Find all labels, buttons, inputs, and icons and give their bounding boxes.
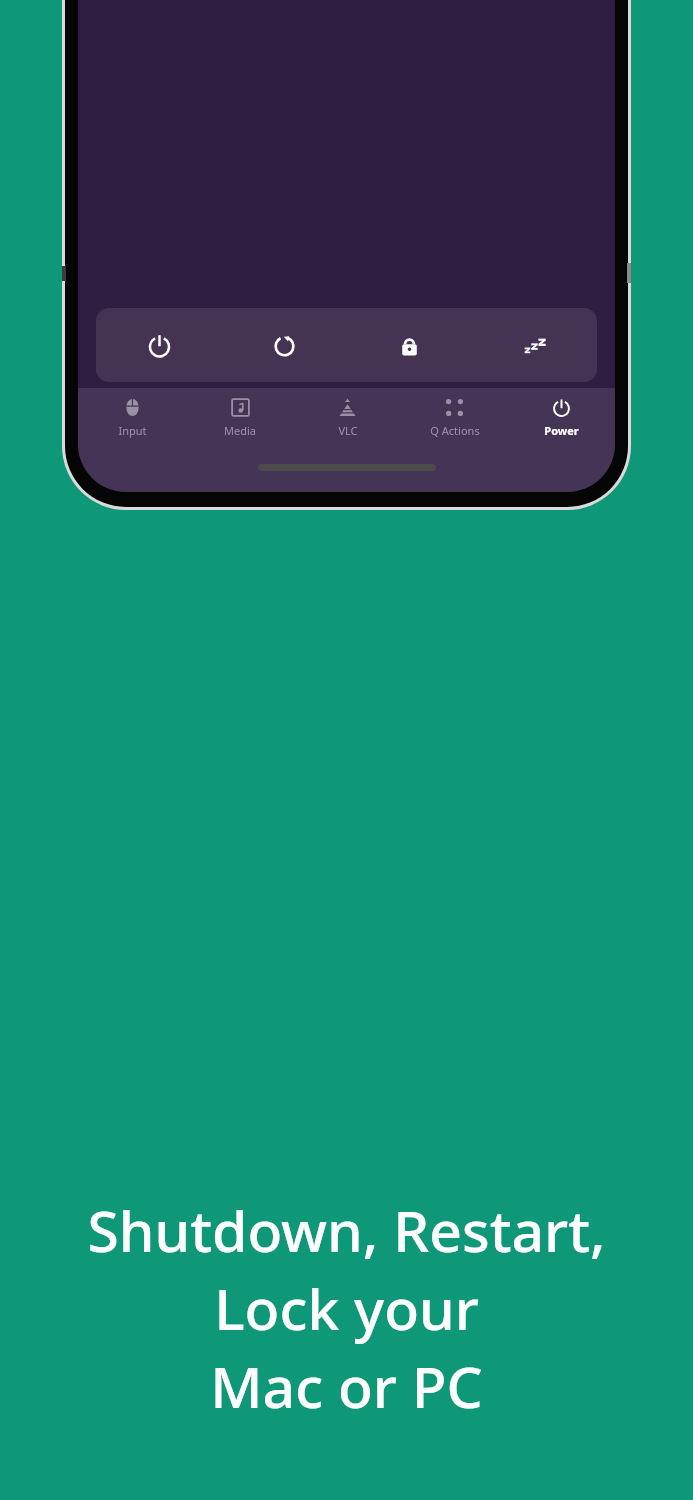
staticText: Power — [544, 423, 579, 438]
button[interactable]: Media — [186, 388, 294, 458]
button[interactable]: Restart — [222, 308, 347, 382]
staticText: VLC — [338, 423, 358, 438]
button[interactable]: Power — [508, 388, 615, 458]
button[interactable]: Q Actions — [401, 388, 508, 458]
button[interactable]: VLC — [294, 388, 401, 458]
staticText: Media — [224, 423, 256, 438]
staticText: Shutdown, Restart, — [87, 1191, 606, 1269]
button[interactable]: Shutdown — [96, 308, 222, 382]
staticText: Mac or PC — [210, 1347, 483, 1425]
button[interactable]: Input — [78, 388, 186, 458]
staticText: Lock your — [214, 1269, 479, 1347]
button[interactable]: Lock — [347, 308, 472, 382]
button[interactable]: Sleep — [472, 308, 597, 382]
staticText: Q Actions — [430, 423, 480, 438]
staticText: Input — [118, 423, 147, 438]
